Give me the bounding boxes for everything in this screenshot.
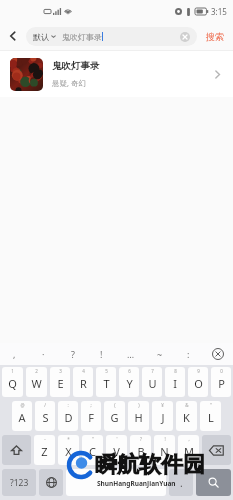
- button[interactable]: 鬼吹灯事录: [0, 51, 233, 97]
- staticText: .: [180, 476, 183, 490]
- button[interactable]: /: [35, 401, 55, 431]
- staticText: A: [18, 410, 26, 425]
- staticText: 8: [174, 368, 177, 374]
- button[interactable]: ?123: [2, 469, 36, 496]
- staticText: X: [65, 444, 72, 459]
- staticText: ;: [90, 402, 92, 408]
- staticText: 9: [197, 368, 200, 374]
- staticText: ,: [13, 348, 16, 360]
- staticText: ): [138, 402, 140, 408]
- button[interactable]: 0: [211, 367, 231, 397]
- button[interactable]: Language: [39, 469, 63, 496]
- button[interactable]: :: [58, 401, 78, 431]
- staticText: ": [92, 436, 94, 442]
- staticText: ?: [71, 348, 75, 360]
- button[interactable]: Search: [196, 469, 231, 496]
- staticText: H: [134, 410, 143, 425]
- button[interactable]: ?: [58, 343, 87, 365]
- staticText: …: [127, 348, 135, 360]
- staticText: (: [114, 402, 116, 408]
- button[interactable]: @: [12, 401, 32, 431]
- button[interactable]: Clear: [179, 31, 190, 42]
- staticText: R: [80, 376, 87, 391]
- button[interactable]: ·: [29, 343, 58, 365]
- button[interactable]: ?: [130, 435, 151, 465]
- staticText: /: [44, 402, 46, 408]
- staticText: G: [110, 410, 119, 425]
- staticText: S: [42, 410, 49, 425]
- staticText: B: [137, 444, 145, 459]
- staticText: 5: [105, 368, 108, 374]
- button[interactable]: ): [128, 401, 149, 431]
- staticText: E: [57, 376, 64, 391]
- staticText: L: [208, 410, 214, 425]
- button[interactable]: ,: [178, 435, 199, 465]
- button[interactable]: !: [154, 435, 175, 465]
- button[interactable]: Delete: [203, 343, 233, 365]
- staticText: M: [184, 444, 194, 459]
- button[interactable]: &: [176, 401, 197, 431]
- button[interactable]: ,: [0, 343, 29, 365]
- staticText: -: [44, 436, 46, 442]
- button[interactable]: 2: [26, 367, 47, 397]
- button[interactable]: -: [34, 435, 55, 465]
- staticText: J: [161, 410, 165, 425]
- staticText: 0: [220, 368, 223, 374]
- button[interactable]: Backspace: [202, 435, 231, 465]
- staticText: T: [103, 376, 110, 391]
- staticText: Y: [126, 376, 133, 391]
- button[interactable]: 搜索: [197, 22, 233, 50]
- button[interactable]: 6: [119, 367, 139, 397]
- staticText: 瞬航软件园: [95, 451, 205, 479]
- button[interactable]: ~: [145, 343, 174, 365]
- staticText: ShunHangRuanJianYuan: [97, 479, 176, 488]
- staticText: U: [148, 376, 157, 391]
- staticText: K: [183, 410, 190, 425]
- staticText: Z: [41, 444, 48, 459]
- staticText: :: [187, 348, 190, 360]
- button[interactable]: ": [82, 435, 103, 465]
- staticText: ,: [188, 436, 190, 442]
- button[interactable]: 1: [2, 367, 23, 397]
- staticText: !: [100, 348, 103, 360]
- staticText: N: [160, 444, 169, 459]
- staticText: ?123: [10, 477, 29, 489]
- button[interactable]: Space: [66, 469, 166, 496]
- button[interactable]: 5: [96, 367, 116, 397]
- button[interactable]: 8: [165, 367, 185, 397]
- staticText: 鬼吹灯事录: [62, 32, 102, 42]
- staticText: Q: [8, 376, 17, 391]
- staticText: 7: [151, 368, 154, 374]
- button[interactable]: .: [169, 469, 193, 496]
- button[interactable]: 9: [188, 367, 208, 397]
- staticText: ?: [140, 436, 142, 442]
- staticText: 2: [35, 368, 38, 374]
- button[interactable]: 3: [50, 367, 70, 397]
- button[interactable]: (: [104, 401, 125, 431]
- staticText: ·: [42, 348, 45, 360]
- staticText: 6: [128, 368, 131, 374]
- button[interactable]: ¥: [152, 401, 173, 431]
- staticText: 悬疑, 奇幻: [52, 78, 86, 88]
- button[interactable]: ': [106, 435, 127, 465]
- button[interactable]: …: [116, 343, 145, 365]
- button[interactable]: !: [87, 343, 116, 365]
- button[interactable]: ;: [81, 401, 101, 431]
- staticText: ¥: [161, 402, 164, 408]
- staticText: I: [173, 376, 177, 391]
- staticText: 4: [82, 368, 85, 374]
- staticText: V: [113, 444, 120, 459]
- button[interactable]: Back: [0, 22, 26, 50]
- button[interactable]: *: [58, 435, 79, 465]
- staticText: P: [218, 376, 225, 391]
- staticText: 鬼吹灯事录: [52, 60, 100, 72]
- staticText: D: [64, 410, 73, 425]
- button[interactable]: 4: [73, 367, 93, 397]
- button[interactable]: ": [200, 401, 221, 431]
- staticText: O: [194, 376, 203, 391]
- button[interactable]: Shift: [2, 435, 31, 465]
- button[interactable]: :: [174, 343, 203, 365]
- staticText: !: [164, 436, 166, 442]
- button[interactable]: 7: [142, 367, 162, 397]
- button[interactable]: 默认: [26, 27, 197, 46]
